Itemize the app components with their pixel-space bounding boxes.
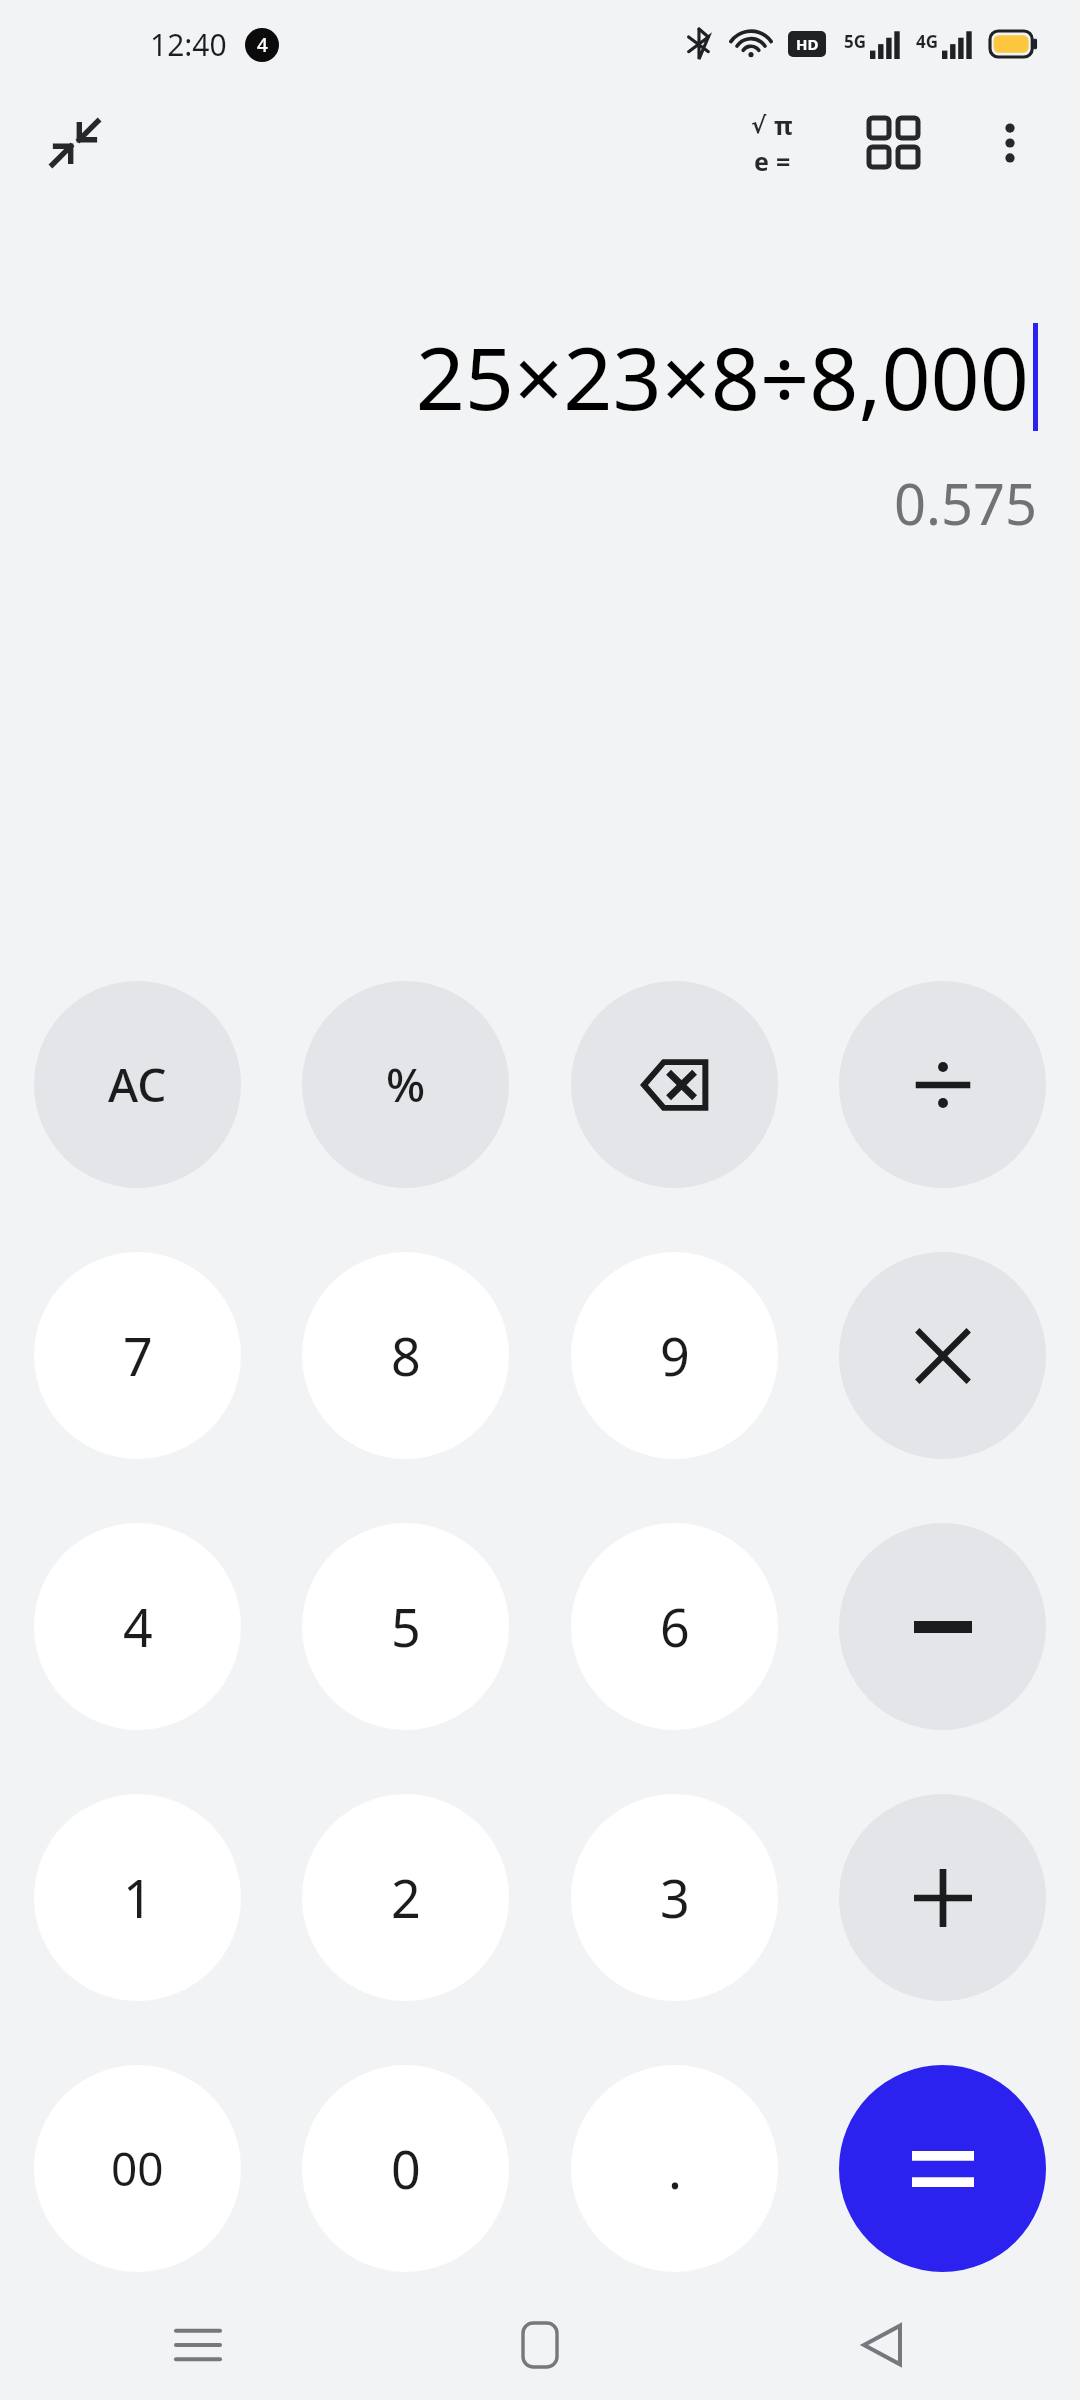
button[interactable]: 8 (302, 1252, 509, 1459)
staticText: 0 (391, 2133, 421, 2204)
staticText: π (774, 108, 793, 142)
staticText: e (754, 144, 769, 178)
staticText: 12:40 (150, 24, 227, 65)
button[interactable]: More options (964, 97, 1056, 189)
button[interactable]: 3 (571, 1794, 778, 2001)
staticText: 4 (257, 32, 268, 58)
staticText: 0.575 (894, 465, 1038, 541)
staticText: 2 (391, 1862, 421, 1933)
staticText: 1 (123, 1862, 153, 1933)
staticText: 25×23×8÷8,000 (415, 318, 1029, 435)
button[interactable]: Equals (839, 2065, 1046, 2272)
button[interactable]: Backspace (571, 981, 778, 1188)
button[interactable]: AC (34, 981, 241, 1188)
staticText: 4G (916, 30, 939, 53)
button[interactable]: Collapse (30, 98, 120, 188)
button[interactable]: 5 (302, 1523, 509, 1730)
button[interactable]: 2 (302, 1794, 509, 2001)
staticText: % (386, 1053, 426, 1116)
button[interactable]: 00 (34, 2065, 241, 2272)
button[interactable]: Home (492, 2297, 588, 2393)
staticText: 6 (660, 1591, 690, 1662)
staticText: 5 (391, 1591, 421, 1662)
staticText: 4 (123, 1591, 153, 1662)
button[interactable]: 9 (571, 1252, 778, 1459)
button[interactable]: Back (834, 2297, 930, 2393)
staticText: 9 (660, 1320, 690, 1391)
button[interactable]: Scientific (726, 97, 818, 189)
button[interactable]: 6 (571, 1523, 778, 1730)
button[interactable]: 1 (34, 1794, 241, 2001)
staticText: 00 (111, 2137, 164, 2200)
staticText: HD (796, 34, 819, 54)
button[interactable]: % (302, 981, 509, 1188)
button[interactable]: Minus (839, 1523, 1046, 1730)
button[interactable]: Plus (839, 1794, 1046, 2001)
staticText: 5G (844, 30, 867, 53)
staticText: . (668, 2133, 682, 2204)
staticText: AC (108, 1053, 167, 1116)
button[interactable]: 7 (34, 1252, 241, 1459)
button[interactable]: 4 (34, 1523, 241, 1730)
staticText: √ (751, 112, 767, 139)
button[interactable]: Multiply (839, 1252, 1046, 1459)
button[interactable]: Recents (150, 2297, 246, 2393)
staticText: 3 (660, 1862, 690, 1933)
staticText: 8 (391, 1320, 421, 1391)
button[interactable]: Grid (848, 97, 940, 189)
staticText: 7 (123, 1320, 153, 1391)
staticText: = (776, 144, 791, 178)
button[interactable]: 0 (302, 2065, 509, 2272)
button[interactable]: Divide (839, 981, 1046, 1188)
button[interactable]: . (571, 2065, 778, 2272)
